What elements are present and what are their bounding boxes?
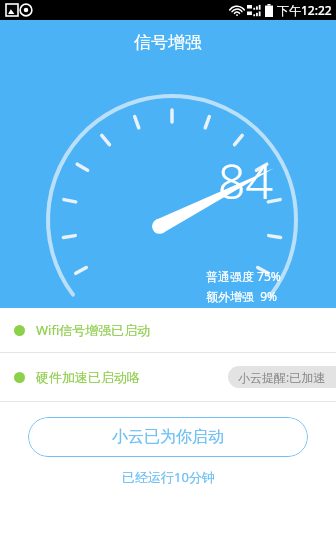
button[interactable]: Wifi信号增强已启动	[0, 308, 336, 352]
button[interactable]: 硬件加速已启动咯	[0, 353, 336, 401]
staticText: Wifi信号增强已启动	[36, 321, 151, 339]
staticText: 小云提醒:已加速	[238, 369, 326, 385]
staticText: 84	[218, 148, 273, 213]
staticText: 小云已为你启动	[112, 427, 224, 447]
staticText: 已经运行10分钟	[122, 468, 215, 486]
staticText: 额外增强 9%	[206, 288, 278, 304]
staticText: 下午12:22	[277, 2, 332, 18]
button[interactable]: 小云已为你启动	[28, 417, 308, 457]
staticText: 硬件加速已启动咯	[36, 369, 140, 385]
button[interactable]: 小云提醒:已加速	[228, 366, 336, 388]
staticText: 普通强度 75%	[206, 268, 281, 284]
staticText: 信号增强	[134, 32, 202, 53]
